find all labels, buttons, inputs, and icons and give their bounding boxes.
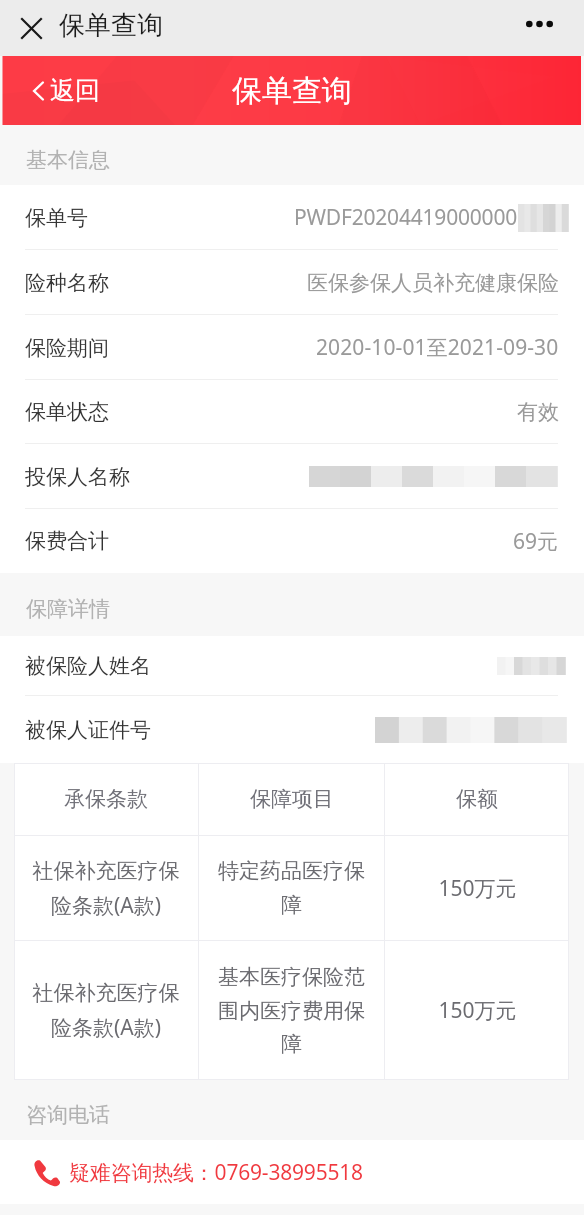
staticText: PWDF20204419000000 [294, 203, 518, 232]
staticText: 保额 [456, 786, 498, 812]
staticText: 险种名称 [25, 270, 109, 296]
button[interactable]: 保单状态 [0, 380, 584, 444]
button[interactable]: 被保险人姓名 [0, 636, 584, 696]
staticText: 保单状态 [25, 399, 109, 425]
button[interactable]: 保单号 [0, 185, 584, 250]
staticText: 保单查询 [232, 72, 352, 110]
staticText: 社保补充医疗保险条款(A款) [31, 980, 181, 1041]
staticText: 保单查询 [59, 9, 163, 42]
staticText: 69元 [513, 527, 559, 556]
button[interactable]: 投保人名称 [0, 444, 584, 509]
staticText: 保险期间 [25, 335, 109, 361]
staticText: 投保人名称 [25, 464, 130, 490]
staticText: 150万元 [438, 874, 517, 903]
staticText: 咨询电话 [26, 1102, 110, 1128]
staticText: 医保参保人员补充健康保险 [307, 270, 559, 296]
staticText: 被保人证件号 [25, 717, 151, 743]
button[interactable]: 被保人证件号 [0, 696, 584, 763]
staticText: 返回 [50, 75, 100, 106]
staticText: 150万元 [438, 996, 517, 1025]
staticText: 疑难咨询热线：0769-38995518 [69, 1158, 363, 1187]
button[interactable]: 返回 [29, 67, 104, 114]
staticText: 保单号 [25, 205, 88, 231]
staticText: 有效 [517, 399, 559, 425]
staticText: 承保条款 [64, 786, 148, 812]
staticText: 基本信息 [26, 147, 110, 173]
staticText: 被保险人姓名 [25, 653, 151, 679]
staticText: 保障项目 [250, 786, 334, 812]
staticText: 2020-10-01至2021-09-30 [316, 333, 559, 362]
staticText: 特定药品医疗保障 [216, 858, 367, 918]
staticText: 保费合计 [25, 528, 109, 554]
button[interactable]: 保险期间 [0, 315, 584, 380]
button[interactable]: 险种名称 [0, 250, 584, 315]
button[interactable]: 保费合计 [0, 509, 584, 573]
button[interactable]: Close [10, 7, 52, 49]
staticText: 保障详情 [26, 596, 110, 622]
button[interactable]: 疑难咨询热线：0769-38995518 [0, 1140, 584, 1204]
button[interactable]: More options [516, 6, 562, 50]
staticText: 社保补充医疗保险条款(A款) [31, 858, 181, 919]
staticText: 基本医疗保险范围内医疗费用保障 [216, 964, 367, 1057]
